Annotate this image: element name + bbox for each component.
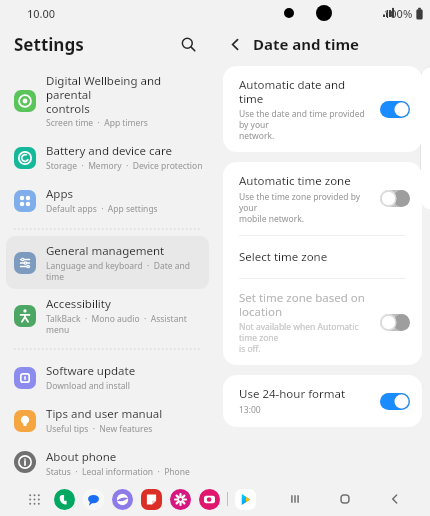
staticText: Use the time zone provided by your mobil… (239, 191, 372, 224)
staticText: Software update (46, 363, 136, 379)
button[interactable]: On (380, 393, 410, 410)
staticText: Select time zone (239, 249, 328, 265)
button[interactable]: About phone (0, 442, 215, 482)
button[interactable]: Search (173, 29, 203, 59)
button[interactable]: Automatic date and time (223, 66, 422, 152)
button[interactable]: GALLERY (170, 489, 191, 510)
staticText: TalkBack · Mono audio · Assistant menu (46, 313, 207, 335)
button[interactable]: Use 24-hour format (223, 375, 422, 427)
button[interactable]: HOME (332, 486, 358, 512)
staticText: Date and time (253, 34, 360, 54)
button[interactable]: Battery and device care (0, 136, 215, 179)
button[interactable]: On (380, 101, 410, 118)
button[interactable]: Digital Wellbeing and parental controls (0, 66, 215, 136)
button[interactable]: BACK (382, 486, 408, 512)
staticText: Default apps · App settings (46, 203, 158, 215)
button[interactable]: Tips and user manual (0, 399, 215, 442)
staticText: Digital Wellbeing and parental controls (46, 73, 207, 116)
button[interactable]: Automatic time zone (223, 162, 422, 235)
button[interactable]: Apps (24, 489, 44, 509)
staticText: Download and install (46, 380, 130, 392)
staticText: Tips and user manual (46, 406, 163, 422)
button[interactable]: INTERNET (112, 489, 133, 510)
staticText: Battery and device care (46, 143, 173, 159)
button[interactable]: MESSAGES (83, 489, 104, 510)
staticText: 100% (384, 6, 413, 21)
button[interactable]: RECENTS (282, 486, 308, 512)
staticText: Use 24-hour format (239, 386, 346, 402)
staticText: Apps (46, 186, 74, 202)
button[interactable]: PHONE (54, 489, 75, 510)
button[interactable]: Accessibility (0, 289, 215, 342)
staticText: Language and keyboard · Date and time (46, 260, 201, 282)
staticText: About phone (46, 449, 117, 465)
staticText: Automatic date and time (239, 77, 372, 106)
button[interactable]: Apps (0, 179, 215, 222)
button[interactable]: General management (6, 236, 209, 289)
staticText: Storage · Memory · Device protection (46, 160, 203, 172)
button[interactable]: Software update (0, 356, 215, 399)
button[interactable]: Select time zone (223, 236, 422, 278)
staticText: Accessibility (46, 296, 111, 312)
staticText: Automatic time zone (239, 173, 351, 189)
button[interactable]: Off (380, 190, 410, 207)
staticText: 13:00 (239, 404, 261, 416)
staticText: Screen time · App timers (46, 117, 148, 129)
button[interactable]: PLAY (235, 489, 256, 510)
button[interactable]: Set time zone based on location (223, 279, 422, 365)
staticText: 10.00 (27, 6, 56, 21)
staticText: Use the date and time provided by your n… (239, 108, 372, 141)
button[interactable]: CAMERA (199, 489, 220, 510)
staticText: Useful tips · New features (46, 423, 153, 435)
staticText: Status · Legal information · Phone name (46, 466, 207, 475)
button[interactable]: Back (221, 30, 249, 58)
staticText: Settings (14, 33, 84, 56)
button[interactable]: NOTE (141, 489, 162, 510)
button[interactable]: Off (380, 314, 410, 331)
staticText: Not available when Automatic time zone i… (239, 321, 372, 354)
staticText: Set time zone based on location (239, 290, 365, 319)
staticText: General management (46, 243, 165, 259)
